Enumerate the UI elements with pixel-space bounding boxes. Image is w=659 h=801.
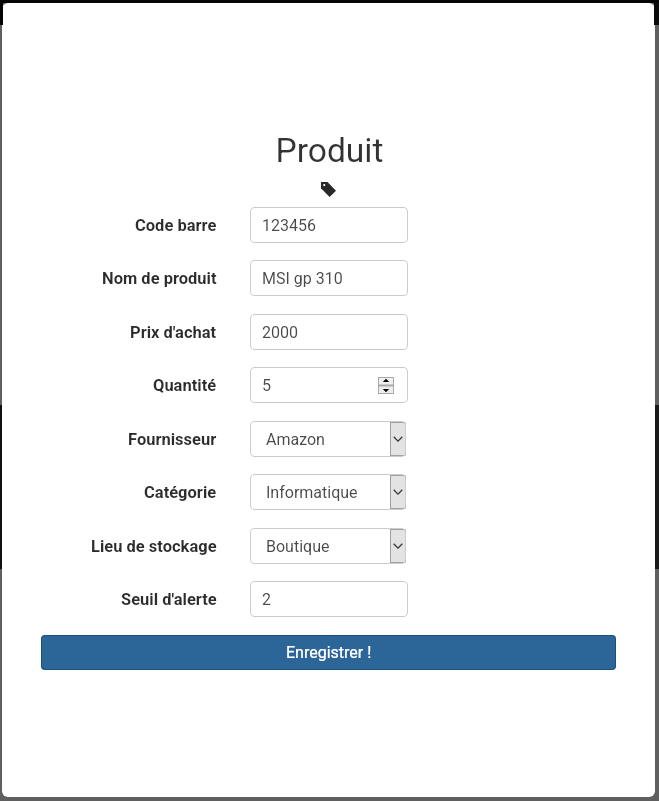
staticText: Quantité [153, 376, 217, 395]
staticText: Informatique [266, 483, 358, 502]
button[interactable]: Increment or decrement [378, 377, 394, 394]
staticText: 5 [262, 376, 271, 395]
button[interactable]: Amazon [250, 421, 406, 457]
staticText: MSI gp 310 [262, 269, 343, 288]
button[interactable]: MSI gp 310 [250, 260, 408, 296]
button[interactable]: 2000 [250, 314, 408, 350]
button[interactable]: 123456 [250, 207, 408, 243]
button[interactable]: Open Lieu de stockage list [390, 529, 406, 563]
staticText: Enregistrer ! [286, 643, 372, 662]
staticText: Prix d'achat [130, 323, 217, 342]
staticText: Catégorie [144, 483, 217, 502]
button[interactable]: Informatique [250, 474, 406, 510]
staticText: Seuil d'alerte [121, 590, 217, 609]
staticText: Lieu de stockage [91, 537, 217, 556]
staticText: Amazon [266, 430, 325, 449]
staticText: Fournisseur [128, 430, 217, 449]
staticText: Boutique [266, 537, 330, 556]
staticText: Produit [3, 131, 655, 170]
staticText: 2 [262, 590, 271, 609]
button[interactable]: 2 [250, 581, 408, 617]
button[interactable]: Open Catégorie list [390, 475, 406, 509]
button[interactable]: 5 [250, 367, 408, 403]
button[interactable]: Boutique [250, 528, 406, 564]
button[interactable]: Enregistrer ! [41, 635, 616, 670]
staticText: Code barre [135, 216, 217, 235]
staticText: 2000 [262, 323, 298, 342]
button[interactable]: Open Fournisseur list [390, 422, 406, 456]
staticText: 123456 [262, 216, 316, 235]
staticText: Nom de produit [102, 269, 217, 288]
